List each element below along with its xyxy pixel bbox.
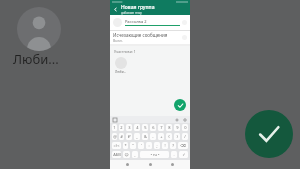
staticText: , xyxy=(134,152,136,157)
staticText: 0 xyxy=(184,125,187,130)
button[interactable]: АБВ xyxy=(112,151,121,158)
button[interactable]: ₽ xyxy=(126,133,132,140)
button[interactable]: =\< xyxy=(112,142,121,149)
button[interactable]: Voice input xyxy=(175,118,179,122)
button[interactable]: Back xyxy=(123,160,132,169)
button[interactable]: / xyxy=(182,133,188,140)
staticText: " xyxy=(132,143,134,148)
staticText: 3 xyxy=(128,125,131,130)
button[interactable]: Исчезающие сообщения xyxy=(113,31,187,44)
button[interactable]: ! xyxy=(162,142,168,149)
staticText: ✓ xyxy=(182,152,186,157)
button[interactable]: ⌫ xyxy=(178,142,188,149)
button[interactable]: Рассылка 2 xyxy=(113,15,187,30)
staticText: 7 xyxy=(160,125,163,130)
other: Back xyxy=(113,7,118,12)
button[interactable]: 6 xyxy=(150,124,156,131)
staticText: _ xyxy=(136,134,138,139)
staticText: ! xyxy=(164,143,166,148)
button[interactable]: . xyxy=(171,151,177,158)
button[interactable]: ' xyxy=(138,142,144,149)
staticText: Люби... xyxy=(115,70,127,74)
button[interactable]: 0 xyxy=(182,124,188,131)
staticText: Участники: 1 xyxy=(114,49,136,54)
staticText: 1 xyxy=(113,125,116,130)
button[interactable]: # xyxy=(119,133,124,140)
button[interactable]: ; xyxy=(154,142,160,149)
staticText: Исчезающие сообщения xyxy=(113,32,168,38)
button[interactable]: : xyxy=(146,142,152,149)
staticText: # xyxy=(120,134,123,139)
staticText: 8 xyxy=(168,125,171,130)
staticText: ) xyxy=(176,134,178,139)
button[interactable]: 9 xyxy=(174,124,180,131)
button[interactable]: , xyxy=(132,151,138,158)
button[interactable]: - xyxy=(150,133,156,140)
button[interactable]: ? xyxy=(170,142,176,149)
staticText: Люби... xyxy=(13,50,59,68)
staticText: ( xyxy=(168,134,170,139)
button[interactable]: + xyxy=(158,133,164,140)
button[interactable]: * xyxy=(123,142,128,149)
staticText: * xyxy=(124,143,127,148)
button[interactable]: ☺ xyxy=(123,151,130,158)
button[interactable]: 5 xyxy=(142,124,148,131)
button[interactable]: ( xyxy=(166,133,172,140)
staticText: ' xyxy=(141,143,142,148)
staticText: Выкл. xyxy=(113,38,123,43)
staticText: ⌫ xyxy=(180,143,186,148)
button[interactable]: Settings xyxy=(183,118,187,122)
button[interactable]: ) xyxy=(174,133,180,140)
staticText: АБВ xyxy=(113,152,121,157)
button[interactable]: Confirm xyxy=(245,110,293,158)
staticText: ☺ xyxy=(124,152,129,157)
staticText: + xyxy=(160,134,163,139)
staticText: ? xyxy=(172,143,174,148)
staticText: 6 xyxy=(152,125,155,130)
staticText: : xyxy=(148,143,150,148)
staticText: @ xyxy=(113,134,117,139)
button[interactable]: ✓ xyxy=(179,151,188,158)
button[interactable]: Recents xyxy=(168,160,177,169)
staticText: 9 xyxy=(176,125,179,130)
staticText: • ru • xyxy=(150,152,160,157)
button[interactable]: & xyxy=(142,133,148,140)
staticText: добавьте тему xyxy=(121,11,142,15)
button[interactable]: Back xyxy=(110,4,190,15)
staticText: / xyxy=(184,134,186,139)
staticText: 4 xyxy=(136,125,139,130)
staticText: =\< xyxy=(113,143,120,148)
button[interactable]: • ru • xyxy=(140,151,169,158)
staticText: . xyxy=(173,152,175,157)
button[interactable]: Home xyxy=(146,160,155,169)
button[interactable]: _ xyxy=(134,133,140,140)
staticText: Рассылка 2 xyxy=(125,19,147,24)
button[interactable]: " xyxy=(130,142,136,149)
staticText: ; xyxy=(156,143,158,148)
staticText: 2 xyxy=(120,125,123,130)
button[interactable]: 1 xyxy=(112,124,117,131)
button[interactable]: 3 xyxy=(126,124,132,131)
staticText: & xyxy=(144,134,147,139)
staticText: ₽ xyxy=(128,134,131,139)
button[interactable]: 2 xyxy=(119,124,124,131)
staticText: Новая группа xyxy=(121,4,155,11)
button[interactable]: 7 xyxy=(158,124,164,131)
button[interactable]: Люби... xyxy=(115,57,127,74)
button[interactable]: 8 xyxy=(166,124,172,131)
button[interactable] xyxy=(16,7,62,51)
staticText: 5 xyxy=(144,125,147,130)
button[interactable]: Stickers xyxy=(113,118,117,122)
button[interactable]: 4 xyxy=(134,124,140,131)
staticText: - xyxy=(152,134,154,139)
button[interactable]: Done xyxy=(174,99,186,111)
button[interactable]: @ xyxy=(112,133,117,140)
